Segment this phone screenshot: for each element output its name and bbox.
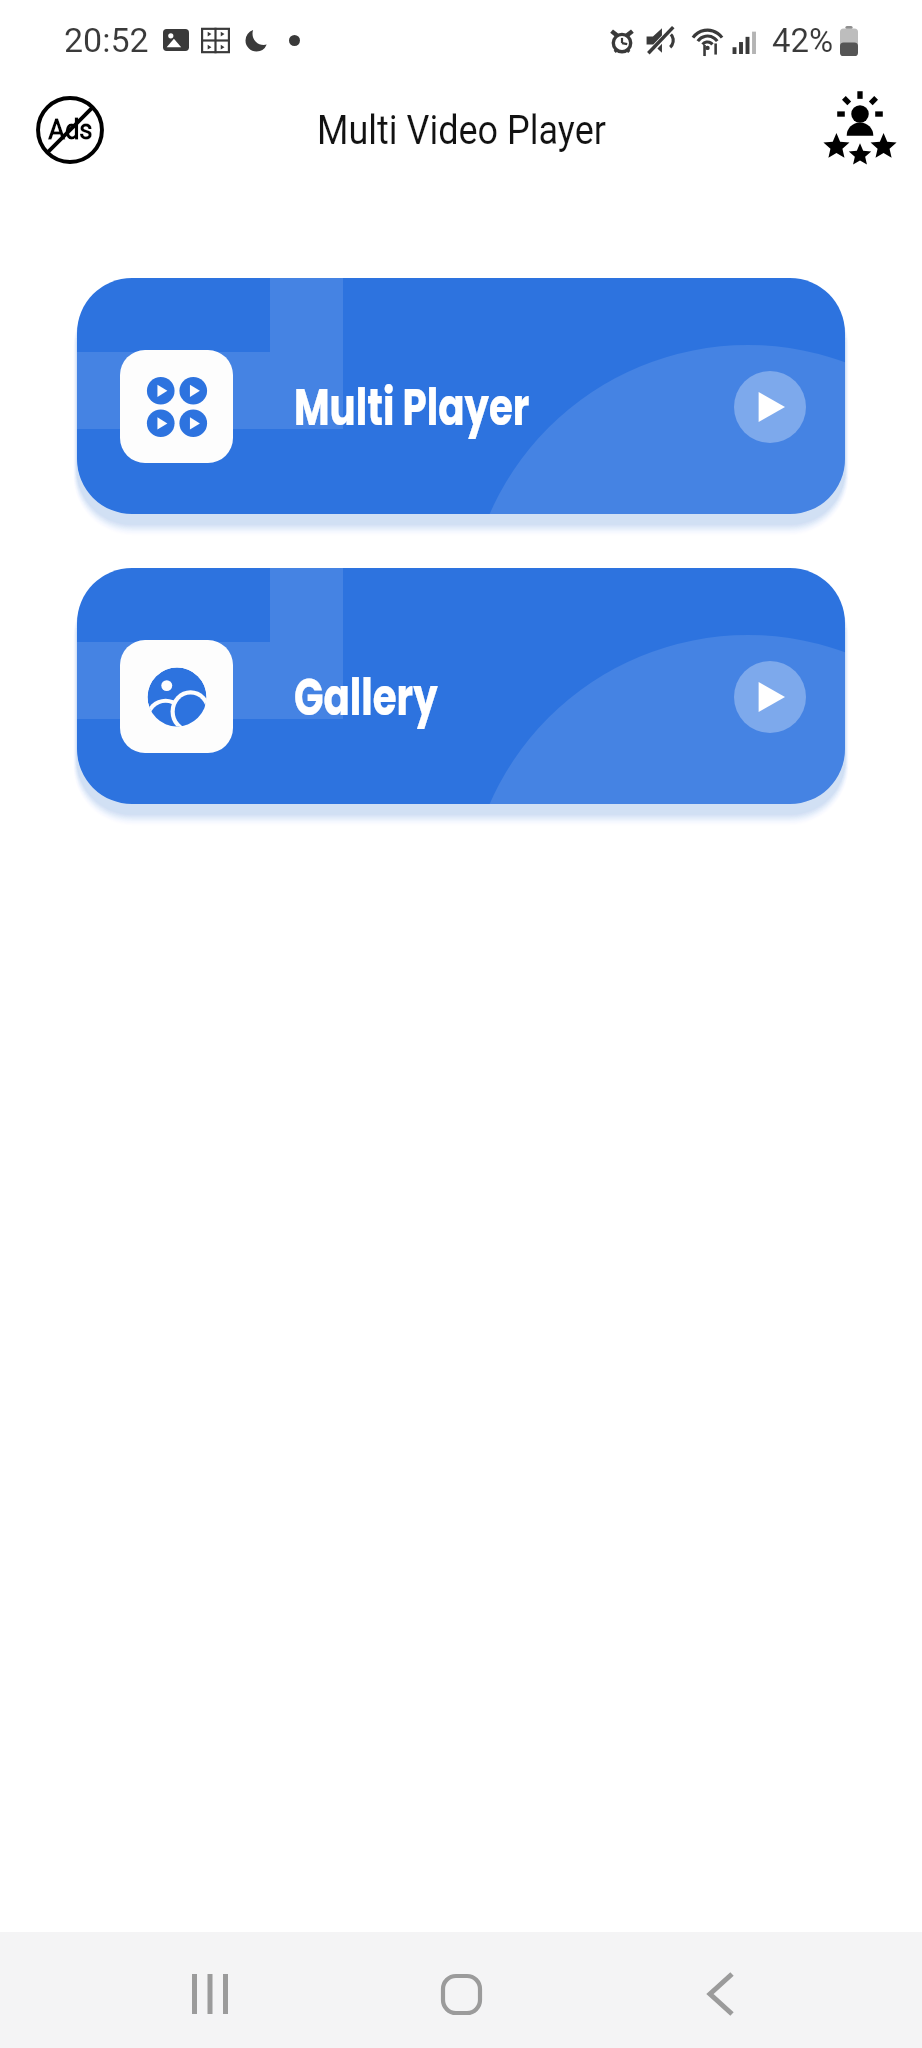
button[interactable]: Back bbox=[688, 1954, 752, 2034]
button[interactable]: Gallery bbox=[77, 568, 845, 804]
staticText: Gallery bbox=[294, 661, 438, 732]
staticText: 20:52 bbox=[64, 20, 149, 60]
staticText: Multi Player bbox=[294, 371, 530, 442]
staticText: 42% bbox=[772, 21, 834, 60]
staticText: Ads bbox=[48, 114, 93, 146]
staticText: Multi Video Player bbox=[317, 107, 606, 154]
button[interactable]: Recents bbox=[171, 1954, 251, 2034]
button[interactable]: Remove ads bbox=[26, 86, 114, 174]
button[interactable]: Multi Player bbox=[77, 278, 845, 514]
button[interactable]: Rate us bbox=[814, 84, 906, 176]
button[interactable]: Home bbox=[421, 1954, 501, 2034]
